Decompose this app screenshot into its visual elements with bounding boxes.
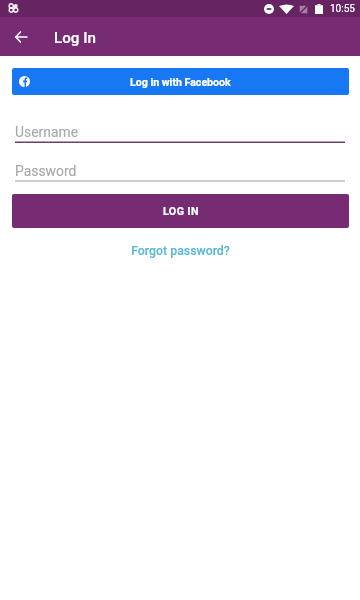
button[interactable]: Log in with Facebook — [12, 68, 349, 95]
staticText: 10:55 — [330, 3, 355, 15]
button[interactable]: Forgot password? — [131, 244, 230, 258]
staticText: Log In — [54, 29, 96, 47]
staticText: Log in with Facebook — [130, 76, 231, 88]
staticText: Username — [15, 124, 79, 140]
staticText: LOG IN — [163, 205, 199, 218]
button[interactable]: Back — [2, 18, 40, 56]
staticText: Forgot password? — [131, 244, 230, 258]
button[interactable]: LOG IN — [12, 194, 349, 228]
staticText: Password — [15, 163, 77, 179]
